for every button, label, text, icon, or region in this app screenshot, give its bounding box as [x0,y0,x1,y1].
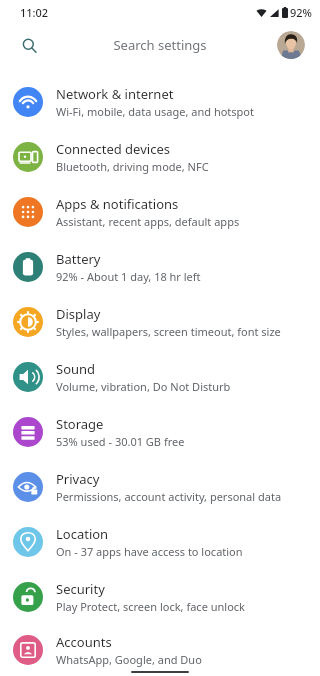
button[interactable]: Account [276,30,306,60]
staticText: On - 37 apps have access to location [56,544,243,559]
staticText: Play Protect, screen lock, face unlock [56,599,245,614]
button[interactable]: Storage [0,404,320,459]
staticText: 92% [290,5,312,20]
button[interactable]: Network & internet [0,74,320,129]
button[interactable]: Apps & notifications [0,184,320,239]
staticText: Permissions, account activity, personal … [56,489,282,504]
staticText: Accounts [56,633,112,651]
staticText: 92% - About 1 day, 18 hr left [56,269,201,284]
staticText: Sound [56,360,96,378]
button[interactable]: Accounts [0,624,320,676]
staticText: Styles, wallpapers, screen timeout, font… [56,324,281,339]
staticText: Apps & notifications [56,195,179,213]
staticText: Connected devices [56,140,170,158]
staticText: Battery [56,250,101,268]
staticText: Volume, vibration, Do Not Disturb [56,379,231,394]
staticText: 11:02 [20,5,49,20]
staticText: Location [56,525,109,543]
staticText: Wi-Fi, mobile, data usage, and hotspot [56,104,254,119]
button[interactable]: Connected devices [0,129,320,184]
button[interactable]: Sound [0,349,320,404]
button[interactable]: Search settings [8,24,312,66]
staticText: Security [56,580,105,598]
staticText: Search settings [44,36,276,54]
staticText: Bluetooth, driving mode, NFC [56,159,209,174]
staticText: Network & internet [56,85,174,103]
button[interactable]: Security [0,569,320,624]
button[interactable]: Battery [0,239,320,294]
button[interactable]: Privacy [0,459,320,514]
staticText: Storage [56,415,104,433]
staticText: Display [56,305,101,323]
button[interactable]: Location [0,514,320,569]
staticText: Privacy [56,470,100,488]
staticText: Assistant, recent apps, default apps [56,214,240,229]
button[interactable]: Display [0,294,320,349]
staticText: 53% used - 30.01 GB free [56,434,185,449]
staticText: WhatsApp, Google, and Duo [56,652,202,667]
